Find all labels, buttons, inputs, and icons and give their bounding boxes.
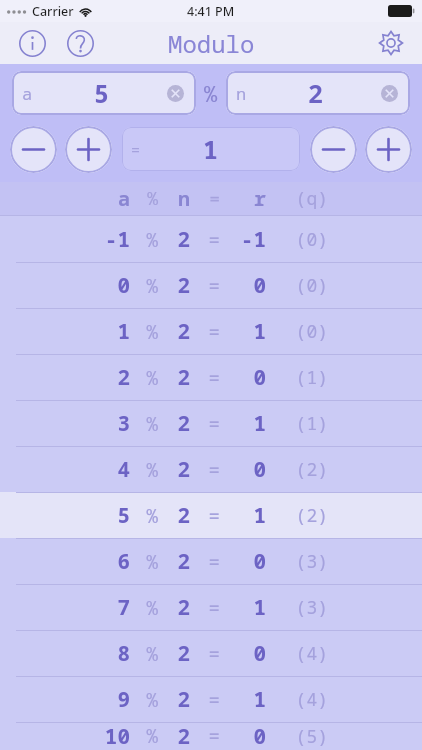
staticText: 1 xyxy=(74,317,130,346)
button[interactable]: Increase a xyxy=(65,126,112,173)
staticText: = xyxy=(131,139,141,159)
staticText: % xyxy=(130,186,158,211)
staticText: % xyxy=(130,723,158,749)
staticText: = xyxy=(190,227,220,253)
button[interactable]: Clear a xyxy=(164,82,186,104)
staticText: 1 xyxy=(220,409,266,438)
button[interactable]: Increase n xyxy=(365,126,412,173)
staticText: 1 xyxy=(220,317,266,346)
staticText: -1 xyxy=(74,225,130,254)
staticText: (5) xyxy=(266,724,328,749)
staticText: (0) xyxy=(266,273,328,298)
staticText: (1) xyxy=(266,365,328,390)
staticText: = xyxy=(190,365,220,391)
staticText: 2 xyxy=(74,363,130,392)
staticText: 2 xyxy=(158,685,190,714)
staticText: (1) xyxy=(266,411,328,436)
staticText: 5 xyxy=(94,76,110,110)
staticText: 1 xyxy=(220,593,266,622)
staticText: 4:41 PM xyxy=(187,3,235,20)
button[interactable]: Settings xyxy=(372,24,410,62)
staticText: (2) xyxy=(266,457,328,482)
staticText: (0) xyxy=(266,319,328,344)
button[interactable]: Help xyxy=(62,25,98,61)
staticText: = xyxy=(190,457,220,483)
button[interactable]: 4 xyxy=(0,446,422,492)
staticText: % xyxy=(130,319,158,345)
staticText: 2 xyxy=(308,76,324,110)
staticText: Modulo xyxy=(168,27,255,60)
staticText: 9 xyxy=(74,685,130,714)
staticText: 3 xyxy=(74,409,130,438)
staticText: (0) xyxy=(266,227,328,252)
staticText: 2 xyxy=(158,639,190,668)
staticText: = xyxy=(190,641,220,667)
staticText: 2 xyxy=(158,722,190,750)
staticText: (q) xyxy=(266,186,328,211)
button[interactable]: 1 xyxy=(0,308,422,354)
staticText: % xyxy=(130,641,158,667)
staticText: 0 xyxy=(220,722,266,750)
staticText: % xyxy=(130,503,158,529)
staticText: a xyxy=(74,185,130,212)
staticText: 2 xyxy=(158,225,190,254)
button[interactable]: Clear n xyxy=(378,82,400,104)
button[interactable]: 9 xyxy=(0,676,422,722)
staticText: (4) xyxy=(266,687,328,712)
staticText: 2 xyxy=(158,455,190,484)
button[interactable]: 0 xyxy=(0,262,422,308)
staticText: n xyxy=(158,185,190,212)
staticText: = xyxy=(190,549,220,575)
button[interactable]: = xyxy=(122,127,300,171)
staticText: 7 xyxy=(74,593,130,622)
staticText: Carrier xyxy=(32,3,74,20)
staticText: 2 xyxy=(158,317,190,346)
staticText: (3) xyxy=(266,549,328,574)
button[interactable]: -1 xyxy=(0,216,422,262)
staticText: % xyxy=(130,457,158,483)
staticText: % xyxy=(130,687,158,713)
staticText: a xyxy=(22,82,33,105)
staticText: = xyxy=(190,273,220,299)
staticText: 0 xyxy=(220,547,266,576)
staticText: 5 xyxy=(74,501,130,530)
button[interactable]: 7 xyxy=(0,584,422,630)
staticText: % xyxy=(130,411,158,437)
staticText: 10 xyxy=(74,722,130,750)
staticText: 2 xyxy=(158,271,190,300)
staticText: = xyxy=(190,186,220,211)
staticText: 0 xyxy=(74,271,130,300)
staticText: % xyxy=(130,365,158,391)
button[interactable]: a xyxy=(12,71,196,115)
button[interactable]: 6 xyxy=(0,538,422,584)
staticText: = xyxy=(190,595,220,621)
button[interactable]: 3 xyxy=(0,400,422,446)
staticText: r xyxy=(220,185,266,212)
staticText: % xyxy=(130,273,158,299)
staticText: (4) xyxy=(266,641,328,666)
button[interactable]: n xyxy=(226,71,410,115)
button[interactable]: Decrease a xyxy=(10,126,57,173)
staticText: 1 xyxy=(220,501,266,530)
button[interactable]: 8 xyxy=(0,630,422,676)
staticText: % xyxy=(130,595,158,621)
staticText: 1 xyxy=(220,685,266,714)
staticText: % xyxy=(130,549,158,575)
button[interactable]: Decrease n xyxy=(310,126,357,173)
button[interactable]: Info xyxy=(14,25,50,61)
staticText: 0 xyxy=(220,363,266,392)
staticText: = xyxy=(190,319,220,345)
staticText: 2 xyxy=(158,547,190,576)
button[interactable]: 10 xyxy=(0,722,422,750)
button[interactable]: 5 xyxy=(0,492,422,538)
staticText: = xyxy=(190,411,220,437)
button[interactable]: 2 xyxy=(0,354,422,400)
staticText: 6 xyxy=(74,547,130,576)
staticText: 2 xyxy=(158,409,190,438)
staticText: 0 xyxy=(220,271,266,300)
staticText: % xyxy=(204,78,218,108)
staticText: 8 xyxy=(74,639,130,668)
staticText: = xyxy=(190,723,220,749)
staticText: 2 xyxy=(158,363,190,392)
staticText: n xyxy=(236,82,247,105)
